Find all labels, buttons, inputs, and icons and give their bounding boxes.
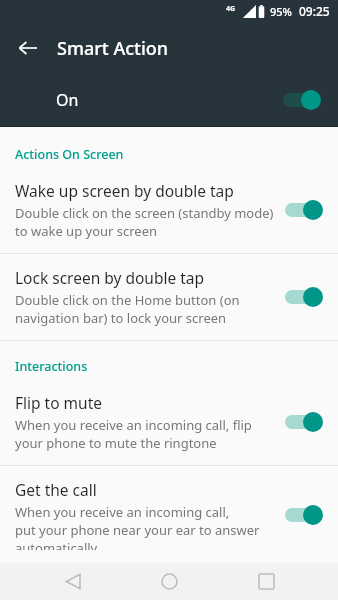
staticText: automatically [15, 539, 98, 550]
button[interactable]: Back [11, 31, 45, 65]
staticText: Lock screen by double tap [15, 267, 205, 288]
staticText: When you receive an incoming call, flip [15, 416, 252, 434]
button[interactable]: Home [145, 563, 193, 600]
button[interactable]: Get the call [0, 466, 338, 563]
button[interactable]: Toggle [278, 87, 322, 113]
button[interactable]: Wake up screen by double tap [0, 167, 338, 253]
button[interactable]: Toggle [280, 502, 324, 528]
staticText: 4G [226, 4, 236, 14]
staticText: 09:25 [299, 3, 330, 19]
staticText: Double click on the screen (standby mode… [15, 204, 274, 222]
staticText: navigation bar) to lock your screen [15, 309, 227, 327]
staticText: Interactions [15, 358, 88, 375]
staticText: When you receive an incoming call, [15, 503, 230, 521]
staticText: Actions On Screen [15, 146, 124, 163]
staticText: Double click on the Home button (on [15, 291, 240, 309]
staticText: put your phone near your ear to answer [15, 521, 260, 539]
button[interactable]: Back [49, 563, 97, 600]
staticText: to wake up your screen [15, 222, 158, 240]
button[interactable]: Lock screen by double tap [0, 254, 338, 340]
staticText: Wake up screen by double tap [15, 180, 234, 201]
button[interactable]: Recents [242, 563, 290, 600]
staticText: Get the call [15, 479, 97, 500]
staticText: 95% [270, 4, 292, 19]
button[interactable]: Toggle [280, 284, 324, 310]
staticText: Flip to mute [15, 392, 103, 413]
button[interactable]: On [0, 74, 338, 126]
button[interactable]: Toggle [280, 197, 324, 223]
staticText: On [56, 89, 79, 111]
staticText: Smart Action [57, 36, 169, 61]
button[interactable]: Flip to mute [0, 379, 338, 465]
button[interactable]: Toggle [280, 409, 324, 435]
staticText: your phone to mute the ringtone [15, 434, 217, 452]
